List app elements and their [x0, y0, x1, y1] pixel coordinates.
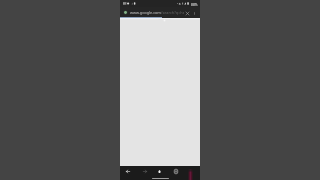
button[interactable]: Site information [123, 10, 128, 15]
staticText: www.google.com [130, 10, 161, 15]
button[interactable]: Home [153, 166, 166, 177]
button[interactable]: Stop loading [184, 8, 191, 18]
button[interactable]: Menu [184, 166, 197, 180]
staticText: 88% [191, 2, 198, 6]
button[interactable]: Back [121, 166, 134, 177]
button[interactable]: Switch tabs [169, 166, 182, 177]
button[interactable]: Forward [138, 166, 151, 177]
button[interactable]: More options [191, 8, 198, 18]
staticText: /search?q=hello+world [161, 10, 184, 15]
